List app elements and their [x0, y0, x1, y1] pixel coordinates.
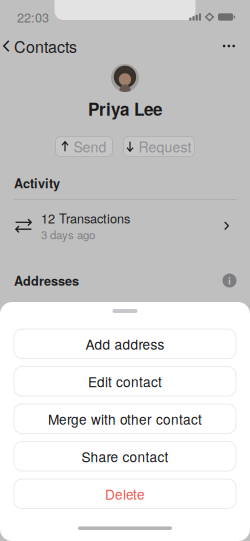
staticText: Addresses — [14, 271, 79, 289]
button[interactable]: Send — [55, 136, 112, 156]
staticText: 12 Transactions — [41, 209, 130, 227]
staticText: Merge with other contact — [48, 409, 202, 428]
staticText: Activity — [14, 174, 60, 192]
staticText: 22:03 — [17, 8, 49, 26]
staticText: Priya Lee — [88, 96, 162, 121]
staticText: 3 days ago — [41, 226, 95, 242]
button[interactable]: Add address — [14, 329, 236, 358]
staticText: Send — [73, 136, 106, 156]
staticText: Contacts — [14, 34, 77, 57]
button[interactable]: Share contact — [14, 441, 236, 471]
staticText: Add address — [85, 334, 164, 353]
button[interactable]: Request — [123, 136, 194, 156]
button[interactable]: Merge with other contact — [14, 404, 236, 433]
button[interactable]: Contacts — [0, 31, 85, 60]
button[interactable]: 12 Transactions — [0, 200, 250, 248]
staticText: Edit contact — [88, 371, 162, 391]
staticText: Share contact — [81, 446, 168, 466]
button[interactable]: Delete — [14, 479, 236, 508]
staticText: Delete — [105, 484, 145, 503]
button[interactable]: More options — [214, 36, 244, 55]
staticText: Request — [138, 136, 191, 156]
button[interactable]: Edit contact — [14, 366, 236, 396]
